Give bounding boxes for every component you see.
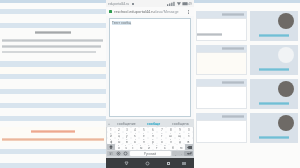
button[interactable]: Shift — [107, 144, 115, 150]
staticText: 11:49 — [184, 2, 192, 6]
staticText: д — [179, 140, 181, 144]
button[interactable]: 6 — [148, 127, 157, 132]
staticText: у — [126, 134, 128, 138]
staticText: я — [118, 146, 120, 150]
staticText: z — [118, 144, 119, 147]
staticText: b — [148, 144, 150, 147]
button[interactable]: 4 — [131, 127, 139, 132]
staticText: g — [143, 138, 145, 141]
button[interactable]: 5 — [139, 127, 148, 132]
button[interactable]: сообще — [140, 119, 167, 127]
button[interactable]: z — [115, 144, 122, 150]
button[interactable]: Hide keyboard — [179, 158, 189, 168]
button[interactable]: j — [157, 138, 166, 144]
button[interactable]: m — [161, 144, 169, 150]
button[interactable]: 9 — [175, 127, 184, 132]
button[interactable]: More options — [186, 9, 191, 14]
staticText: q — [110, 132, 112, 135]
button[interactable]: 8 — [166, 127, 175, 132]
button[interactable]: t — [139, 132, 148, 138]
button[interactable]: ' — [184, 138, 193, 144]
staticText: l — [179, 138, 180, 141]
button[interactable]: 0 — [184, 127, 193, 132]
button[interactable]: c — [129, 144, 137, 150]
button[interactable]: Settings — [115, 151, 122, 156]
button[interactable]: 1 — [107, 127, 115, 132]
button[interactable]: i — [166, 132, 175, 138]
button[interactable]: 2 — [115, 127, 123, 132]
staticText: 8 — [170, 128, 172, 132]
button[interactable]: f — [131, 138, 139, 144]
button[interactable]: o — [175, 132, 184, 138]
button[interactable]: Home — [142, 158, 152, 168]
staticText: ц — [118, 134, 120, 138]
staticText: 6 — [152, 128, 154, 132]
button[interactable]: Back — [121, 158, 131, 168]
staticText: . — [181, 152, 182, 156]
button[interactable]: Русский — [130, 151, 171, 156]
button[interactable]: Текст сообщ — [109, 18, 191, 117]
staticText: !#1 — [109, 152, 113, 156]
staticText: /asu/Message — [155, 9, 179, 14]
button[interactable]: l — [175, 138, 184, 144]
button[interactable]: Comma — [172, 151, 178, 156]
button[interactable]: p — [184, 132, 193, 138]
button[interactable]: Backspace — [185, 144, 193, 150]
button[interactable]: h — [148, 138, 157, 144]
staticText: л — [170, 140, 172, 144]
button[interactable]: reschool.eduportal44.ru — [106, 7, 194, 16]
staticText: h — [152, 138, 154, 141]
staticText: 2 — [118, 128, 120, 132]
staticText: r — [135, 132, 136, 135]
button[interactable]: u — [157, 132, 166, 138]
button[interactable]: q — [107, 132, 115, 138]
button[interactable]: y — [148, 132, 157, 138]
button[interactable]: , — [169, 144, 177, 150]
button[interactable]: k — [166, 138, 175, 144]
staticText: 5 — [143, 128, 145, 132]
staticText: , — [175, 152, 176, 156]
button[interactable]: 3 — [123, 127, 131, 132]
staticText: ж — [187, 140, 190, 144]
staticText: р — [152, 140, 154, 144]
button[interactable]: e — [123, 132, 131, 138]
button[interactable]: . — [177, 144, 185, 150]
button[interactable]: n — [153, 144, 161, 150]
staticText: eduportal44.ru — [108, 2, 130, 6]
button[interactable]: 7 — [157, 127, 166, 132]
staticText: m — [164, 144, 166, 147]
staticText: a — [110, 138, 112, 141]
button[interactable]: r — [131, 132, 139, 138]
button[interactable]: Enter — [184, 151, 193, 156]
button[interactable]: сообщение — [112, 119, 140, 127]
button[interactable]: x — [122, 144, 129, 150]
staticText: i — [170, 132, 171, 135]
staticText: o — [179, 132, 181, 135]
staticText: e — [126, 132, 128, 135]
button[interactable]: d — [123, 138, 131, 144]
staticText: 4 — [134, 128, 136, 132]
staticText: s — [118, 138, 120, 141]
button[interactable]: v — [137, 144, 145, 150]
staticText: ы — [118, 140, 121, 144]
button[interactable]: s — [115, 138, 123, 144]
staticText: c — [132, 144, 134, 147]
button[interactable]: w — [115, 132, 123, 138]
staticText: н — [152, 134, 154, 138]
staticText: d — [126, 138, 128, 141]
staticText: y — [152, 132, 154, 135]
button[interactable]: Recents — [163, 158, 173, 168]
staticText: + — [108, 121, 111, 126]
button[interactable]: a — [107, 138, 115, 144]
button[interactable]: Emoji — [122, 151, 129, 156]
button[interactable]: g — [139, 138, 148, 144]
button[interactable]: Symbols — [107, 151, 115, 156]
staticText: reschool.eduportal44.ru — [114, 9, 155, 14]
staticText: е — [143, 134, 145, 138]
staticText: x — [125, 144, 127, 147]
staticText: и — [148, 146, 150, 150]
button[interactable]: b — [145, 144, 153, 150]
staticText: t — [143, 132, 144, 135]
button[interactable]: сообщена — [167, 119, 194, 127]
